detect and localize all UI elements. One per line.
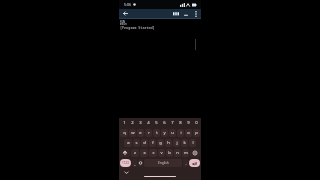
button[interactable]: 0 <box>193 118 200 128</box>
staticText: y <box>163 130 166 136</box>
button[interactable]: Emoji <box>138 159 143 167</box>
staticText: main <box>120 22 127 26</box>
button[interactable]: w <box>129 129 136 137</box>
staticText: k <box>183 140 186 146</box>
staticText: . <box>185 161 187 166</box>
button[interactable]: 8 <box>177 118 184 128</box>
button[interactable]: x <box>140 149 148 157</box>
button[interactable]: i <box>177 129 184 137</box>
button[interactable]: Back <box>119 9 132 18</box>
staticText: 0 <box>195 120 198 126</box>
button[interactable]: r <box>145 129 152 137</box>
staticText: n <box>176 150 179 156</box>
button[interactable]: Shift <box>120 149 130 157</box>
staticText: t <box>156 130 158 136</box>
staticText: l <box>192 140 194 146</box>
button[interactable]: 3 <box>137 118 144 128</box>
staticText: , <box>134 161 136 166</box>
staticText: ?123 <box>122 161 129 165</box>
button[interactable]: y <box>161 129 168 137</box>
button[interactable]: , <box>132 159 137 167</box>
staticText: 4 <box>147 120 150 126</box>
staticText: v <box>160 150 163 156</box>
staticText: c <box>152 150 155 156</box>
button[interactable]: 1 <box>120 118 128 128</box>
staticText: j <box>176 140 178 146</box>
staticText: 2 <box>131 120 134 126</box>
staticText: 3 <box>139 120 142 126</box>
staticText: a <box>127 140 130 146</box>
staticText: 6 <box>163 120 166 126</box>
button[interactable]: z <box>131 149 139 157</box>
button[interactable]: e <box>137 129 144 137</box>
button[interactable]: . <box>183 159 188 167</box>
button[interactable]: p <box>193 129 200 137</box>
staticText: English <box>158 161 169 165</box>
staticText: q <box>123 130 126 136</box>
button[interactable]: More options <box>191 9 200 18</box>
button[interactable]: g <box>157 139 164 147</box>
staticText: 7 <box>171 120 174 126</box>
button[interactable]: a <box>124 139 132 147</box>
staticText: m <box>184 150 188 156</box>
staticText: x <box>143 150 146 156</box>
button[interactable]: 4 <box>145 118 152 128</box>
button[interactable]: English <box>144 159 182 167</box>
staticText: g <box>159 140 162 146</box>
staticText: i <box>180 130 182 136</box>
button[interactable]: ?123 <box>120 159 131 167</box>
button[interactable]: k <box>181 139 188 147</box>
button[interactable]: Hide <box>181 9 191 18</box>
staticText: 9 <box>187 120 190 126</box>
button[interactable]: m <box>182 149 189 157</box>
staticText: e <box>139 130 142 136</box>
button[interactable]: o <box>185 129 192 137</box>
button[interactable]: 9 <box>185 118 192 128</box>
staticText: s <box>135 140 138 146</box>
button[interactable]: u <box>169 129 176 137</box>
staticText: d <box>143 140 146 146</box>
staticText: w <box>131 130 135 136</box>
staticText: r <box>148 130 150 136</box>
button[interactable]: f <box>149 139 156 147</box>
button[interactable]: Keyboard <box>171 9 181 18</box>
button[interactable]: c <box>149 149 157 157</box>
button[interactable]: h <box>165 139 172 147</box>
button[interactable]: j <box>173 139 180 147</box>
button[interactable]: 7 <box>169 118 176 128</box>
button[interactable]: b <box>166 149 173 157</box>
staticText: u <box>171 130 174 136</box>
staticText: 5 <box>155 120 158 126</box>
button[interactable]: n <box>174 149 181 157</box>
staticText: 1 <box>123 120 126 126</box>
staticText: 8 <box>179 120 182 126</box>
staticText: RUN <box>120 20 126 24</box>
button[interactable]: s <box>133 139 140 147</box>
staticText: p <box>195 130 198 136</box>
button[interactable]: Hide keyboard <box>123 169 130 176</box>
button[interactable]: 6 <box>161 118 168 128</box>
button[interactable]: Backspace <box>190 149 200 157</box>
staticText: h <box>167 140 170 146</box>
button[interactable]: l <box>189 139 196 147</box>
staticText: z <box>134 150 136 156</box>
button[interactable]: 5 <box>153 118 160 128</box>
button[interactable]: Enter <box>189 159 200 167</box>
staticText: [Program Started] <box>120 25 155 30</box>
button[interactable]: t <box>153 129 160 137</box>
staticText: b <box>168 150 171 156</box>
button[interactable]: 2 <box>129 118 136 128</box>
button[interactable]: d <box>141 139 148 147</box>
button[interactable]: v <box>158 149 165 157</box>
staticText: 5:06 <box>124 2 132 7</box>
staticText: f <box>152 140 154 146</box>
button[interactable]: q <box>120 129 128 137</box>
staticText: o <box>187 130 190 136</box>
